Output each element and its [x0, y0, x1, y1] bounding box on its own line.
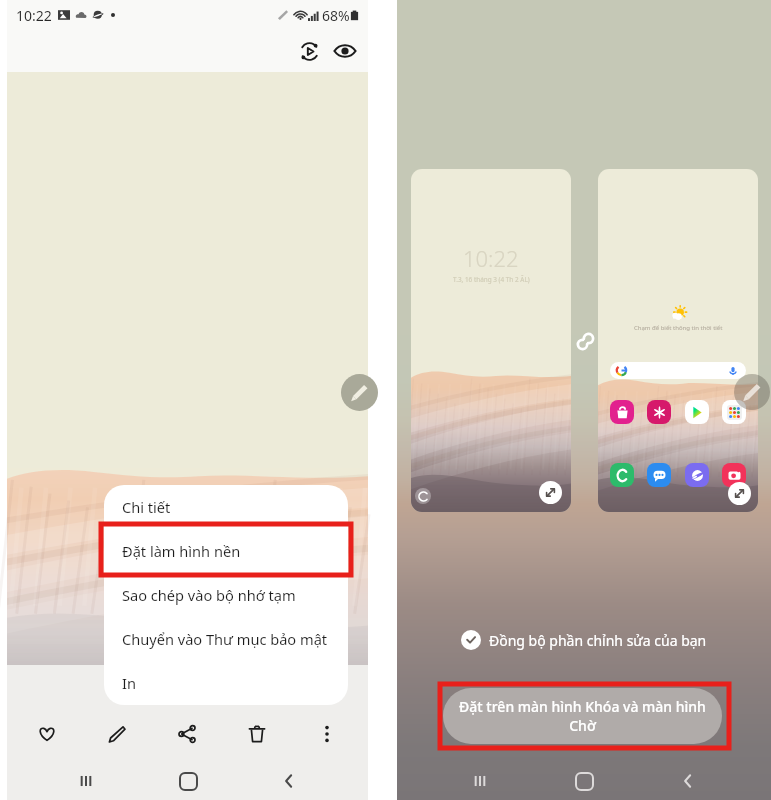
button[interactable]: More options [310, 717, 344, 751]
staticText: 10:22 [463, 243, 519, 273]
button[interactable]: folder [722, 400, 746, 424]
button[interactable]: phone [610, 463, 634, 487]
button[interactable]: Back [267, 759, 311, 800]
button[interactable]: Search [610, 362, 746, 379]
button[interactable]: Motion photo [292, 34, 326, 68]
staticText: Chuyển vào Thư mục bảo mật [122, 629, 328, 649]
button[interactable]: Linked [572, 328, 598, 354]
staticText: Đặt làm hình nền [122, 541, 241, 561]
button[interactable]: Expand [728, 482, 751, 505]
staticText: Đặt trên màn hình Khóa và màn hình Chờ [459, 697, 706, 735]
button[interactable]: Share [170, 717, 204, 751]
button[interactable]: Chạm để biết thông tin thời tiết [598, 169, 758, 512]
button[interactable]: flower [647, 400, 671, 424]
button[interactable]: Expand [539, 481, 562, 504]
button[interactable]: Edit [734, 374, 770, 410]
button[interactable]: 10:22 [411, 169, 571, 512]
button[interactable]: Back [667, 760, 709, 800]
staticText: Chạm để biết thông tin thời tiết [634, 324, 723, 332]
button[interactable]: play [685, 400, 709, 424]
button[interactable]: Đồng bộ phần chỉnh sửa của bạn [397, 624, 771, 656]
button[interactable]: Chi tiết [104, 485, 348, 529]
button[interactable]: Favourite [30, 717, 64, 751]
button[interactable]: Recents [459, 760, 501, 800]
button[interactable]: Delete [240, 717, 274, 751]
button[interactable]: browser [685, 463, 709, 487]
button[interactable]: Home [166, 759, 210, 800]
button[interactable]: Edit [341, 374, 378, 411]
button[interactable]: Home [563, 760, 605, 800]
staticText: 10:22 [16, 6, 52, 25]
staticText: In [122, 673, 136, 693]
staticText: 68% [322, 6, 350, 25]
staticText: Chi tiết [122, 497, 171, 517]
staticText: Đồng bộ phần chỉnh sửa của bạn [489, 631, 707, 650]
button[interactable]: cam [722, 463, 746, 487]
staticText: T.3, 16 tháng 3 (4 Th 2 ÂL) [453, 275, 530, 284]
button[interactable]: msg [647, 463, 671, 487]
button[interactable]: Sao chép vào bộ nhớ tạm [104, 573, 348, 617]
button[interactable]: View [328, 34, 362, 68]
button[interactable]: Edit [100, 717, 134, 751]
button[interactable]: bag [610, 400, 634, 424]
staticText: Sao chép vào bộ nhớ tạm [122, 585, 296, 605]
button[interactable]: Đặt làm hình nền [104, 529, 348, 573]
button[interactable]: Recents [64, 759, 108, 800]
button[interactable]: Đặt trên màn hình Khóa và màn hình Chờ [443, 688, 722, 744]
button[interactable]: Phone shortcut [415, 488, 431, 504]
button[interactable]: In [104, 661, 348, 705]
button[interactable]: Chuyển vào Thư mục bảo mật [104, 617, 348, 661]
